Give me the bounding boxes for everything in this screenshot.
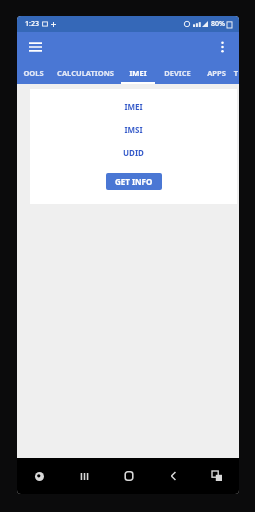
staticText: IMSI	[124, 124, 143, 135]
button[interactable]: Back	[151, 458, 195, 494]
staticText: 1:23	[25, 19, 39, 29]
button[interactable]: IMEI	[121, 62, 155, 84]
button[interactable]: Keyboard toggle	[17, 458, 62, 494]
button[interactable]: CALCULATIONS	[49, 62, 121, 84]
staticText: TE	[233, 68, 239, 78]
button[interactable]: More options	[212, 37, 232, 57]
staticText: DEVICE	[164, 68, 191, 78]
button[interactable]: IMSI	[30, 124, 237, 135]
button[interactable]: Home	[107, 458, 151, 494]
button[interactable]: DEVICE	[155, 62, 199, 84]
staticText: GET INFO	[115, 176, 153, 187]
button[interactable]: OOLS	[17, 62, 49, 84]
button[interactable]: Open navigation menu	[25, 37, 45, 57]
button[interactable]: Recent apps	[62, 458, 107, 494]
button[interactable]: IMEI	[30, 101, 237, 112]
staticText: UDID	[123, 147, 144, 158]
staticText: 80%	[211, 19, 225, 29]
staticText: IMEI	[124, 101, 143, 112]
button[interactable]: Screenshot	[195, 458, 239, 494]
button[interactable]: TE	[233, 62, 239, 84]
button[interactable]: GET INFO	[106, 173, 162, 190]
button[interactable]: UDID	[30, 147, 237, 158]
staticText: IMEI	[129, 68, 147, 78]
staticText: OOLS	[23, 68, 44, 78]
button[interactable]: APPS	[199, 62, 233, 84]
staticText: APPS	[207, 68, 226, 78]
staticText: CALCULATIONS	[57, 68, 114, 78]
